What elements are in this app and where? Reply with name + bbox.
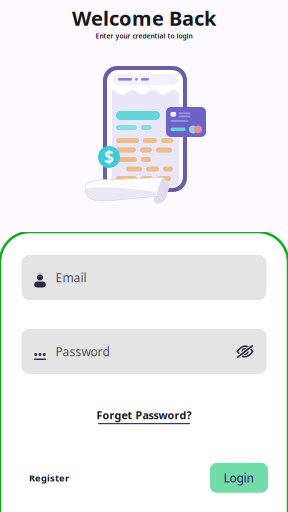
button[interactable]: Register xyxy=(29,463,81,493)
staticText: Email xyxy=(55,269,86,285)
staticText: Register xyxy=(29,472,69,484)
staticText: Password xyxy=(55,343,109,359)
staticText: Login xyxy=(223,470,254,486)
staticText: Forget Password? xyxy=(96,408,191,422)
button[interactable]: Forget Password? xyxy=(88,402,199,430)
staticText: $ xyxy=(104,145,114,168)
staticText: Welcome Back xyxy=(72,5,216,31)
button[interactable]: Login xyxy=(210,463,268,493)
staticText: Enter your credential to login xyxy=(95,32,192,40)
